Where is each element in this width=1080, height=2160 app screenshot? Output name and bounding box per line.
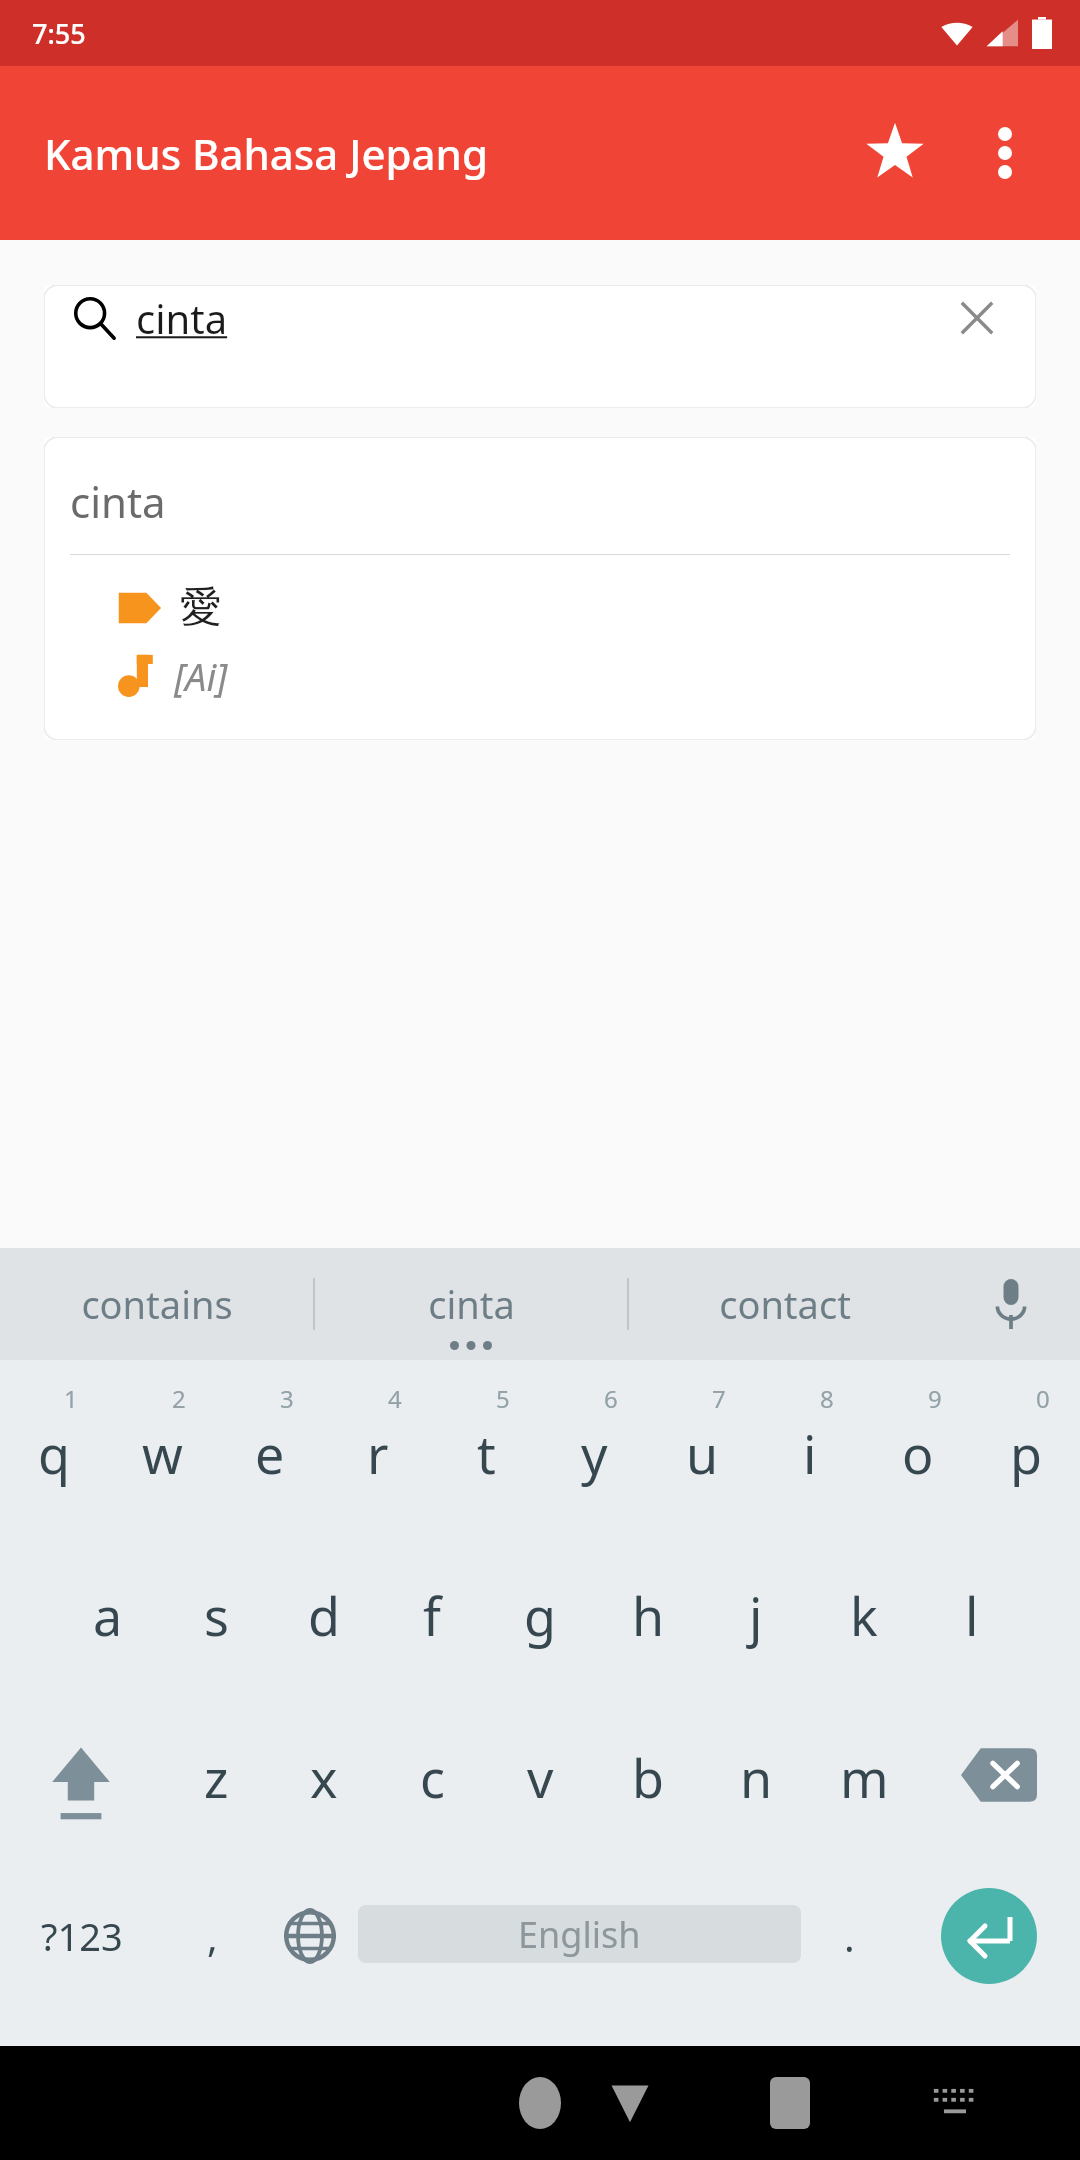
- button[interactable]: c: [378, 1700, 486, 1870]
- staticText: w: [142, 1418, 183, 1489]
- staticText: cinta: [136, 291, 228, 345]
- staticText: 1: [64, 1382, 78, 1415]
- button[interactable]: Recents: [730, 2046, 850, 2160]
- staticText: c: [420, 1742, 445, 1813]
- button[interactable]: n: [702, 1700, 810, 1870]
- staticText: u: [686, 1418, 719, 1489]
- button[interactable]: Backspace: [918, 1700, 1080, 1870]
- staticText: 9: [928, 1382, 942, 1415]
- button[interactable]: h: [594, 1530, 702, 1700]
- staticText: English: [518, 1910, 641, 1959]
- button[interactable]: cinta: [44, 437, 1036, 740]
- staticText: j: [749, 1580, 763, 1651]
- button[interactable]: Clear search: [944, 285, 1010, 351]
- staticText: g: [524, 1580, 556, 1651]
- staticText: 7:55: [32, 15, 86, 52]
- button[interactable]: k: [810, 1530, 918, 1700]
- button[interactable]: l: [918, 1530, 1026, 1700]
- button[interactable]: .: [801, 1870, 898, 2046]
- staticText: 6: [604, 1382, 618, 1415]
- button[interactable]: English: [358, 1870, 801, 2046]
- button[interactable]: 5: [432, 1360, 540, 1530]
- button[interactable]: 9: [864, 1360, 972, 1530]
- staticText: n: [740, 1742, 773, 1813]
- button[interactable]: 8: [756, 1360, 864, 1530]
- staticText: 0: [1036, 1382, 1050, 1415]
- button[interactable]: d: [270, 1530, 378, 1700]
- button[interactable]: a: [54, 1530, 162, 1700]
- staticText: 3: [280, 1382, 294, 1415]
- staticText: d: [308, 1580, 340, 1651]
- staticText: m: [840, 1742, 889, 1813]
- button[interactable]: Home: [480, 2046, 600, 2160]
- staticText: 愛: [180, 581, 222, 634]
- staticText: 7: [712, 1382, 726, 1415]
- staticText: z: [204, 1742, 229, 1813]
- button[interactable]: Favorites: [840, 98, 950, 208]
- button[interactable]: 2: [108, 1360, 216, 1530]
- button[interactable]: Enter: [898, 1870, 1080, 2046]
- staticText: ?123: [41, 1910, 123, 1962]
- button[interactable]: v: [486, 1700, 594, 1870]
- staticText: r: [367, 1418, 389, 1489]
- staticText: [Ai]: [174, 650, 228, 702]
- button[interactable]: ,: [164, 1870, 261, 2046]
- button[interactable]: Shift: [0, 1700, 162, 1870]
- button[interactable]: 6: [540, 1360, 648, 1530]
- staticText: k: [850, 1580, 878, 1651]
- staticText: .: [844, 1909, 855, 1963]
- button[interactable]: j: [702, 1530, 810, 1700]
- button[interactable]: b: [594, 1700, 702, 1870]
- button[interactable]: ?123: [0, 1870, 164, 2046]
- button[interactable]: z: [162, 1700, 270, 1870]
- button[interactable]: f: [378, 1530, 486, 1700]
- staticText: cinta: [428, 1278, 515, 1330]
- staticText: i: [803, 1418, 817, 1489]
- staticText: 4: [388, 1382, 402, 1415]
- button[interactable]: cinta: [315, 1248, 627, 1360]
- staticText: a: [93, 1580, 123, 1651]
- staticText: contact: [719, 1278, 851, 1330]
- button[interactable]: contains: [0, 1248, 313, 1360]
- staticText: 8: [820, 1382, 834, 1415]
- button[interactable]: m: [810, 1700, 918, 1870]
- staticText: e: [255, 1418, 285, 1489]
- button[interactable]: 7: [648, 1360, 756, 1530]
- button[interactable]: Change language: [261, 1870, 358, 2046]
- staticText: o: [902, 1418, 934, 1489]
- button[interactable]: cinta: [44, 285, 1036, 408]
- staticText: 2: [172, 1382, 186, 1415]
- staticText: Kamus Bahasa Jepang: [44, 125, 488, 182]
- button[interactable]: Voice input: [941, 1248, 1080, 1360]
- button[interactable]: More options: [950, 98, 1060, 208]
- staticText: f: [423, 1580, 441, 1651]
- button[interactable]: Back: [180, 2046, 1080, 2160]
- button[interactable]: 3: [216, 1360, 324, 1530]
- staticText: q: [38, 1418, 70, 1489]
- staticText: x: [310, 1742, 338, 1813]
- staticText: cinta: [70, 473, 166, 530]
- staticText: b: [632, 1742, 664, 1813]
- staticText: p: [1010, 1418, 1042, 1489]
- staticText: y: [581, 1418, 608, 1489]
- staticText: v: [527, 1742, 554, 1813]
- staticText: ,: [207, 1909, 218, 1963]
- button[interactable]: contact: [629, 1248, 941, 1360]
- staticText: h: [632, 1580, 665, 1651]
- button[interactable]: x: [270, 1700, 378, 1870]
- button[interactable]: 0: [972, 1360, 1080, 1530]
- button[interactable]: 1: [0, 1360, 108, 1530]
- staticText: s: [204, 1580, 229, 1651]
- staticText: 5: [496, 1382, 510, 1415]
- staticText: contains: [81, 1278, 233, 1330]
- staticText: l: [965, 1580, 979, 1651]
- button[interactable]: 4: [324, 1360, 432, 1530]
- button[interactable]: g: [486, 1530, 594, 1700]
- button[interactable]: s: [162, 1530, 270, 1700]
- staticText: t: [477, 1418, 496, 1489]
- button[interactable]: Keyboard: [910, 2058, 1000, 2148]
